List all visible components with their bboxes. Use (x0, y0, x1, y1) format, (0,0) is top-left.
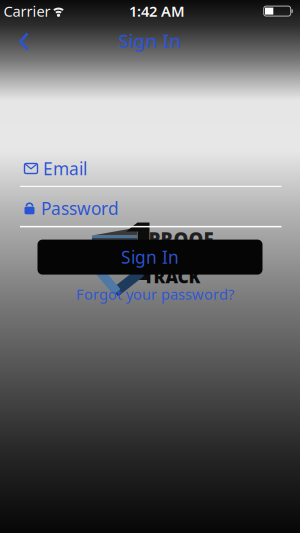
button[interactable]: Forgot your password? (76, 284, 234, 304)
staticText: PROOF (148, 227, 213, 251)
staticText: Password (41, 197, 119, 220)
staticText: TRACK (143, 265, 200, 288)
staticText: Email (43, 157, 87, 180)
button[interactable] (16, 30, 32, 52)
staticText: Sign In (121, 246, 179, 269)
button[interactable]: Sign In (37, 240, 262, 275)
staticText: Forgot your password? (76, 284, 234, 304)
button[interactable]: Email (24, 149, 286, 187)
staticText: 1:42 AM (129, 1, 185, 21)
staticText: Carrier (3, 1, 50, 21)
staticText: Sign In (118, 28, 181, 53)
button[interactable]: Password (24, 189, 286, 227)
